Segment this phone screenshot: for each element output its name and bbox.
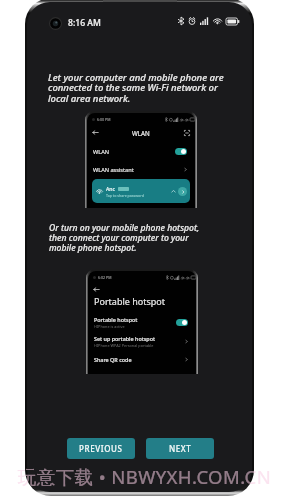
staticText: Tap to share password: [106, 193, 144, 198]
staticText: Anc: [106, 185, 116, 192]
button[interactable]: Scan QR: [184, 130, 190, 136]
staticText: Portable hotspot: [94, 295, 165, 307]
button[interactable]: Anc: [92, 179, 190, 203]
button[interactable]: WLAN: [93, 145, 187, 158]
button[interactable]: Back: [93, 286, 100, 293]
staticText: Or turn on your mobile phone hotspot, th…: [49, 222, 201, 254]
button[interactable]: WLAN assistant: [93, 163, 188, 176]
button[interactable]: NEXT: [146, 438, 214, 459]
staticText: 8:16 AM: [68, 17, 101, 29]
staticText: NEXT: [169, 443, 192, 454]
button[interactable]: Toggle: [175, 148, 187, 155]
staticText: Set up portable hotspot: [94, 335, 156, 342]
button[interactable]: Portable hotspot: [94, 314, 188, 331]
button[interactable]: PREVIOUS: [67, 438, 135, 459]
button[interactable]: Set up portable hotspot: [94, 331, 189, 352]
staticText: Let your computer and mobile phone are c…: [48, 71, 228, 105]
staticText: WLAN: [132, 129, 150, 137]
staticText: WLAN assistant: [93, 166, 134, 174]
staticText: PREVIOUS: [79, 443, 123, 454]
staticText: Share QR code: [94, 356, 132, 363]
staticText: 6:02 PM: [98, 275, 112, 280]
staticText: Portable hotspot: [94, 316, 138, 323]
staticText: 玩意下载 • NBWYXH.COM.CN: [4, 464, 281, 489]
staticText: WLAN: [93, 148, 109, 156]
button[interactable]: Back: [92, 129, 99, 136]
button[interactable]: Share QR code: [94, 352, 189, 366]
staticText: HIPhone WPA2 Personal portable: [94, 343, 154, 348]
button[interactable]: Toggle: [176, 319, 188, 326]
staticText: 6:00 PM: [97, 117, 111, 122]
staticText: HIPhone is active: [94, 324, 125, 329]
